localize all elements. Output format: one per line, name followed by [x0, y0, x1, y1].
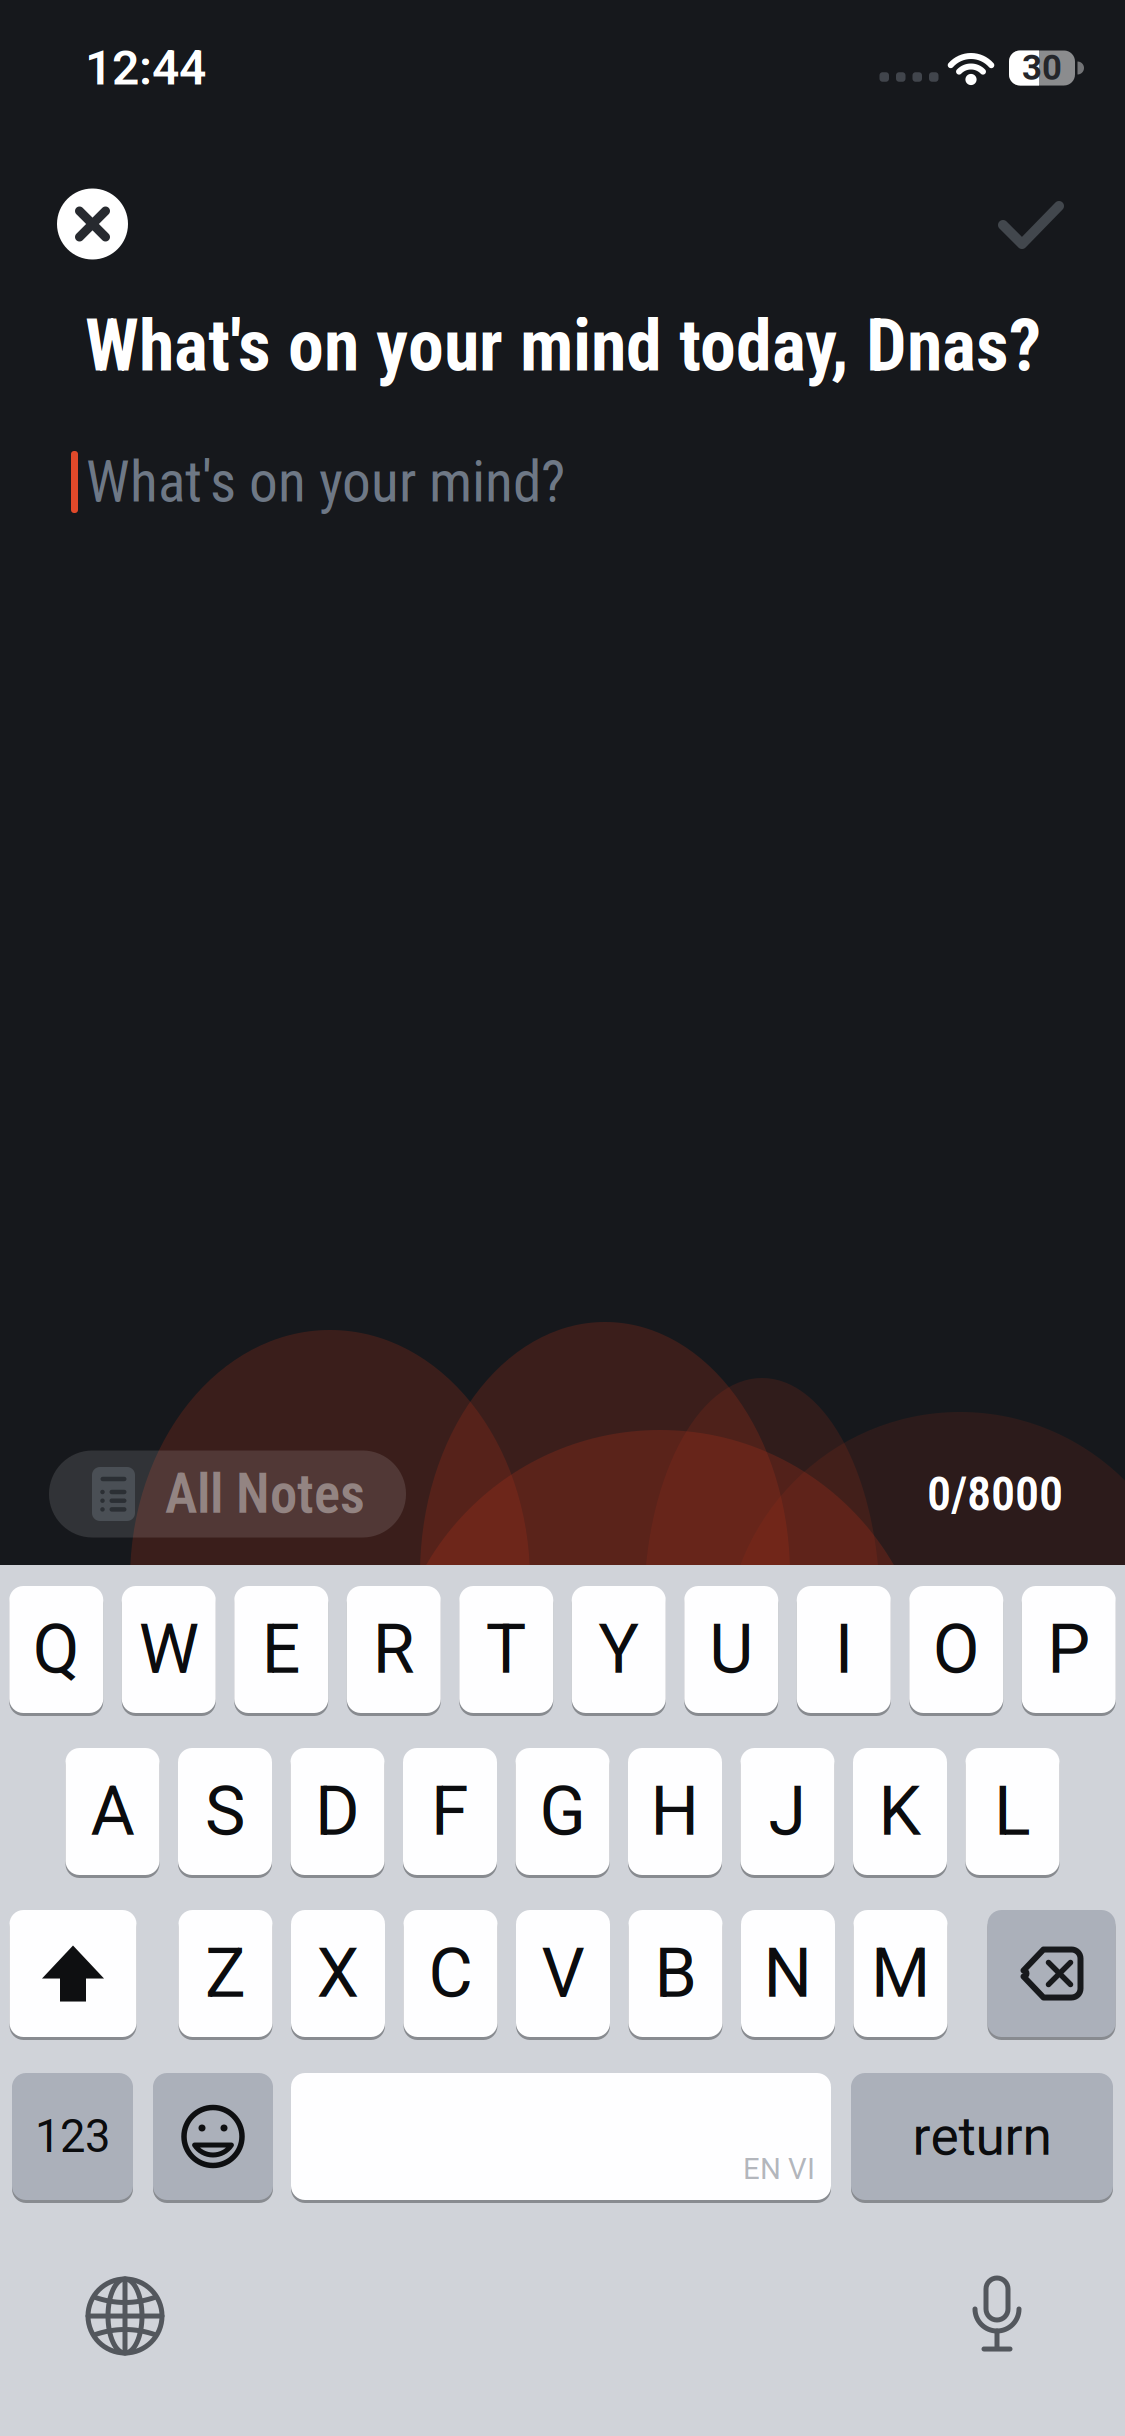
staticText: F: [431, 1772, 469, 1851]
staticText: U: [709, 1610, 753, 1689]
button[interactable]: M: [853, 1910, 947, 2037]
staticText: Z: [205, 1934, 246, 2013]
staticText: R: [373, 1610, 415, 1689]
staticText: H: [650, 1772, 699, 1851]
staticText: E: [262, 1610, 301, 1689]
staticText: T: [486, 1610, 527, 1689]
staticText: N: [763, 1934, 812, 2013]
staticText: return: [912, 2105, 1051, 2168]
button[interactable]: Shift: [9, 1910, 136, 2037]
staticText: I: [835, 1610, 853, 1689]
button[interactable]: E: [234, 1586, 328, 1713]
button[interactable]: J: [740, 1748, 834, 1875]
button[interactable]: O: [909, 1586, 1003, 1713]
staticText: M: [871, 1934, 930, 2013]
button[interactable]: Dictate: [964, 2275, 1030, 2359]
button[interactable]: D: [290, 1748, 384, 1875]
button[interactable]: Next keyboard: [85, 2276, 165, 2356]
button[interactable]: L: [965, 1748, 1059, 1875]
staticText: 30: [1022, 48, 1062, 88]
button[interactable]: X: [291, 1910, 385, 2037]
button[interactable]: T: [459, 1586, 553, 1713]
staticText: What's on your mind today, Dnas?: [85, 304, 1041, 388]
button[interactable]: C: [403, 1910, 497, 2037]
staticText: Q: [33, 1610, 80, 1689]
staticText: L: [994, 1772, 1031, 1851]
staticText: K: [878, 1772, 921, 1851]
staticText: J: [768, 1772, 806, 1851]
staticText: 0/8000: [927, 1466, 1063, 1522]
button[interactable]: I: [797, 1586, 891, 1713]
button[interactable]: K: [853, 1748, 947, 1875]
button[interactable]: Close: [57, 188, 128, 259]
button[interactable]: R: [347, 1586, 441, 1713]
button[interactable]: H: [628, 1748, 722, 1875]
staticText: A: [90, 1772, 134, 1851]
staticText: P: [1047, 1610, 1090, 1689]
staticText: C: [428, 1934, 472, 2013]
staticText: EN VI: [743, 2152, 815, 2186]
button[interactable]: F: [403, 1748, 497, 1875]
staticText: D: [315, 1772, 360, 1851]
button[interactable]: P: [1022, 1586, 1116, 1713]
staticText: S: [205, 1772, 245, 1851]
button[interactable]: V: [516, 1910, 610, 2037]
staticText: W: [139, 1610, 199, 1689]
staticText: All Notes: [165, 1462, 365, 1526]
button[interactable]: N: [741, 1910, 835, 2037]
button[interactable]: Delete: [987, 1910, 1115, 2037]
staticText: 12:44: [85, 40, 206, 96]
staticText: V: [541, 1934, 584, 2013]
button[interactable]: return: [851, 2073, 1113, 2200]
button[interactable]: Emoji: [153, 2073, 273, 2200]
staticText: G: [539, 1772, 585, 1851]
button[interactable]: Z: [178, 1910, 272, 2037]
staticText: X: [316, 1934, 359, 2013]
button[interactable]: A: [65, 1748, 159, 1875]
button[interactable]: Y: [572, 1586, 666, 1713]
button[interactable]: Space: [291, 2073, 831, 2200]
button[interactable]: Save: [999, 201, 1063, 249]
button[interactable]: U: [684, 1586, 778, 1713]
button[interactable]: S: [178, 1748, 272, 1875]
button[interactable]: G: [515, 1748, 609, 1875]
button[interactable]: All Notes: [49, 1450, 406, 1537]
staticText: B: [654, 1934, 696, 2013]
button[interactable]: B: [628, 1910, 722, 2037]
button[interactable]: 123: [12, 2073, 133, 2200]
button[interactable]: Q: [9, 1586, 103, 1713]
staticText: O: [933, 1610, 980, 1689]
staticText: Y: [598, 1610, 639, 1689]
button[interactable]: W: [122, 1586, 216, 1713]
staticText: 123: [35, 2110, 110, 2163]
staticText: What's on your mind?: [86, 448, 565, 516]
